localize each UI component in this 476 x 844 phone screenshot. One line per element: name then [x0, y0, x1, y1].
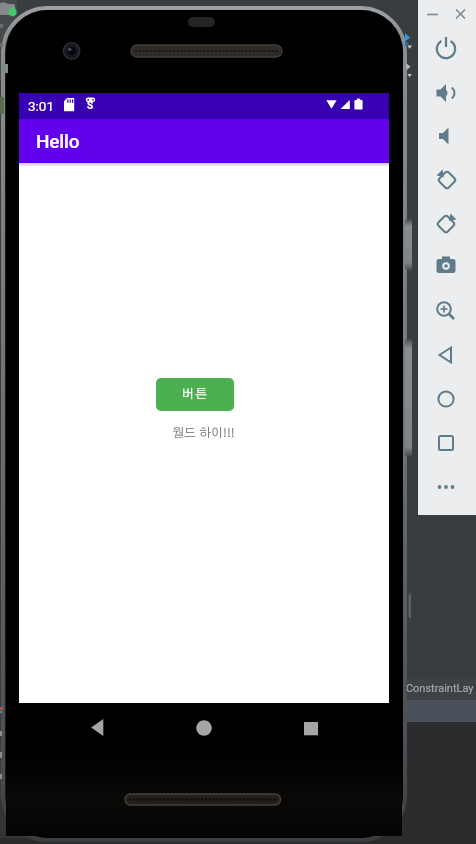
button[interactable]	[429, 294, 463, 328]
button[interactable]	[429, 31, 463, 65]
button[interactable]	[429, 470, 463, 504]
button[interactable]	[73, 703, 121, 753]
button[interactable]	[429, 119, 463, 153]
button[interactable]	[424, 6, 442, 22]
button[interactable]	[452, 6, 470, 22]
button[interactable]	[287, 703, 335, 753]
button[interactable]	[429, 426, 463, 460]
staticText: 버튼	[182, 388, 209, 401]
button[interactable]	[430, 163, 464, 197]
staticText: 월드 하이!!!	[172, 427, 235, 440]
button[interactable]: 버튼	[156, 378, 234, 411]
staticText: .ConstraintLay	[403, 682, 474, 695]
button[interactable]	[429, 338, 463, 372]
button[interactable]	[180, 703, 228, 753]
button[interactable]	[429, 76, 463, 110]
button[interactable]	[429, 249, 463, 283]
staticText: Hello	[36, 130, 80, 152]
button[interactable]	[429, 207, 463, 241]
button[interactable]	[429, 382, 463, 416]
staticText: S	[87, 100, 94, 111]
staticText: 3:01	[28, 98, 55, 114]
